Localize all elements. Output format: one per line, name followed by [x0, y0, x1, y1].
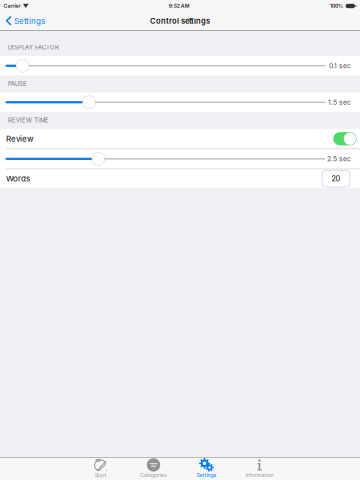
staticText: Settings	[14, 16, 45, 26]
staticText: Settings	[196, 472, 216, 478]
staticText: Start	[94, 472, 106, 479]
staticText: Review	[6, 134, 34, 144]
staticText: Control settings	[150, 16, 210, 26]
staticText: 20	[331, 174, 340, 183]
staticText: REVIEW TIME	[8, 117, 49, 124]
staticText: 100%	[330, 3, 343, 9]
staticText: 2.5 sec	[327, 155, 351, 163]
staticText: 0.1 sec	[329, 62, 351, 70]
button[interactable]: Categories	[127, 458, 180, 480]
button[interactable]: Start	[74, 458, 127, 480]
staticText: 9:52 AM	[169, 3, 190, 9]
staticText: Information	[245, 472, 273, 478]
staticText: Carrier	[3, 3, 20, 9]
staticText: PAUSE	[8, 80, 27, 87]
button[interactable]: 20	[322, 170, 350, 187]
button[interactable]: Settings	[0, 12, 50, 30]
staticText: Words	[6, 174, 30, 184]
button[interactable]: Settings	[180, 458, 233, 480]
button[interactable]: Information	[233, 458, 286, 480]
staticText: DISPLAY FACTOR	[8, 44, 59, 51]
staticText: Categories	[140, 472, 167, 478]
staticText: 1.5 sec	[328, 98, 351, 106]
button[interactable]	[333, 132, 356, 145]
